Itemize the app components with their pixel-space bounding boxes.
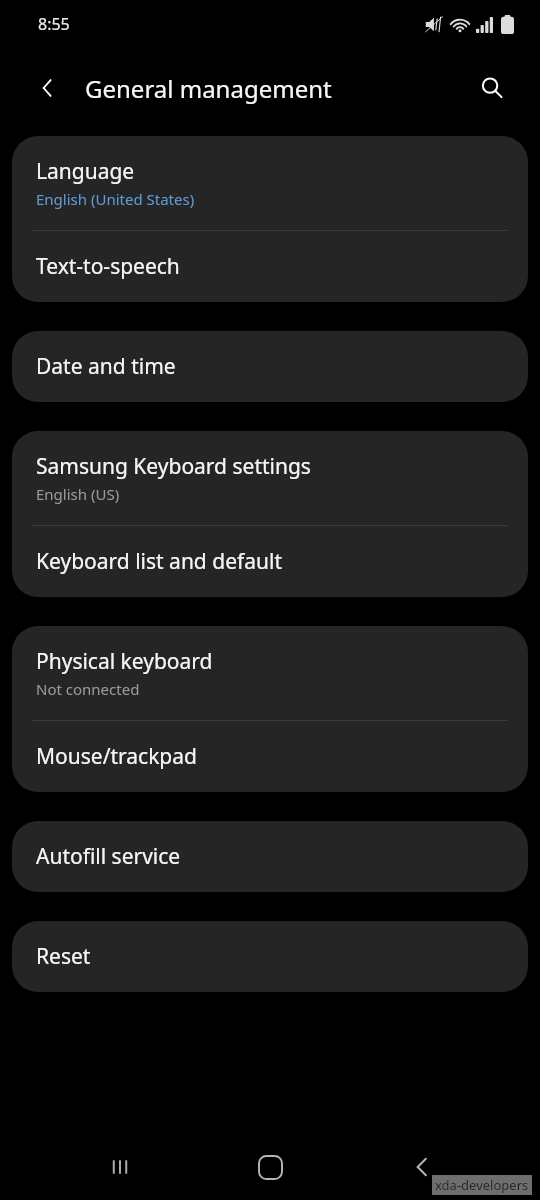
button[interactable]: Back	[392, 1137, 452, 1197]
staticText: 8:55	[38, 13, 70, 35]
button[interactable]: Keyboard list and default	[12, 526, 528, 597]
button[interactable]: Language	[12, 136, 528, 230]
button[interactable]: Date and time	[12, 331, 528, 402]
button[interactable]: Mouse/trackpad	[12, 721, 528, 792]
staticText: xda-developers	[435, 1176, 529, 1194]
staticText: Text-to-speech	[36, 252, 180, 281]
button[interactable]: Physical keyboard	[12, 626, 528, 720]
staticText: Autofill service	[36, 842, 181, 871]
button[interactable]: Autofill service	[12, 821, 528, 892]
staticText: Not connected	[36, 679, 140, 699]
button[interactable]: Home	[240, 1137, 300, 1197]
staticText: General management	[85, 72, 332, 105]
button[interactable]: Reset	[12, 921, 528, 992]
staticText: Mouse/trackpad	[36, 742, 197, 771]
staticText: Physical keyboard	[36, 647, 213, 676]
staticText: Samsung Keyboard settings	[36, 452, 311, 481]
button[interactable]: Back	[26, 66, 70, 110]
staticText: Keyboard list and default	[36, 547, 282, 576]
staticText: English (US)	[36, 484, 120, 504]
staticText: Date and time	[36, 352, 176, 381]
button[interactable]: Recent apps	[90, 1137, 150, 1197]
button[interactable]: Search	[470, 66, 514, 110]
staticText: Reset	[36, 942, 91, 971]
staticText: Language	[36, 157, 135, 186]
button[interactable]: Samsung Keyboard settings	[12, 431, 528, 525]
staticText: English (United States)	[36, 189, 195, 209]
button[interactable]: Text-to-speech	[12, 231, 528, 302]
